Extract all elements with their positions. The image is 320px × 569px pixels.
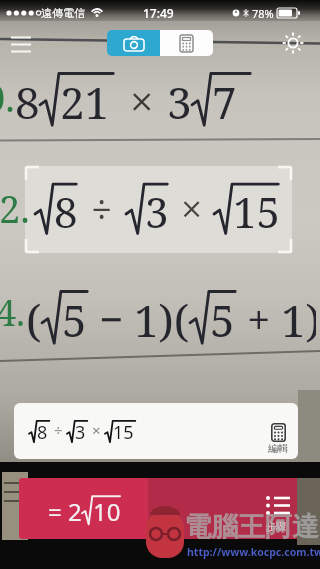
staticText: ( bbox=[26, 290, 42, 350]
staticText: 7 bbox=[212, 72, 237, 132]
staticText: 電腦王阿達 bbox=[184, 510, 319, 544]
button[interactable] bbox=[145, 478, 297, 539]
staticText: 15 bbox=[233, 183, 280, 240]
staticText: 8 bbox=[15, 72, 40, 132]
staticText: × bbox=[181, 182, 203, 234]
staticText: 遠傳電信 bbox=[41, 6, 85, 20]
staticText: 10 bbox=[93, 495, 121, 528]
button[interactable] bbox=[6, 32, 42, 62]
staticText: − bbox=[99, 290, 124, 347]
staticText: 5 bbox=[210, 290, 235, 350]
staticText: 1)( bbox=[134, 290, 190, 350]
staticText: 8 bbox=[37, 420, 48, 445]
staticText: = 2 bbox=[48, 495, 82, 528]
staticText: http://www.kocpc.com.tw bbox=[187, 545, 320, 559]
staticText: 17:49 bbox=[143, 5, 174, 21]
staticText: 2. bbox=[0, 182, 30, 234]
staticText: 3 bbox=[75, 420, 86, 445]
staticText: × bbox=[88, 420, 105, 440]
staticText: × bbox=[130, 72, 154, 129]
staticText: 8 bbox=[54, 183, 78, 240]
button[interactable] bbox=[107, 30, 160, 56]
staticText: 15 bbox=[113, 420, 134, 445]
staticText: + bbox=[247, 290, 271, 347]
staticText: 編輯 bbox=[268, 442, 288, 455]
button[interactable] bbox=[160, 30, 213, 56]
staticText: 0. bbox=[0, 71, 15, 123]
staticText: 5 bbox=[62, 290, 87, 350]
staticText: 3 bbox=[167, 72, 192, 132]
button[interactable]: = 2 bbox=[19, 478, 148, 539]
button[interactable]: 步驟 bbox=[260, 494, 296, 536]
staticText: 步驟 bbox=[266, 520, 286, 533]
staticText: ÷ bbox=[50, 420, 67, 440]
staticText: 3 bbox=[145, 183, 169, 240]
staticText: 4. bbox=[0, 288, 26, 337]
staticText: 78% bbox=[252, 6, 274, 21]
button[interactable] bbox=[281, 31, 305, 55]
staticText: ÷ bbox=[91, 182, 113, 234]
staticText: 21 bbox=[60, 72, 110, 132]
staticText: 1) bbox=[281, 290, 316, 350]
button[interactable]: 8 bbox=[14, 403, 298, 459]
